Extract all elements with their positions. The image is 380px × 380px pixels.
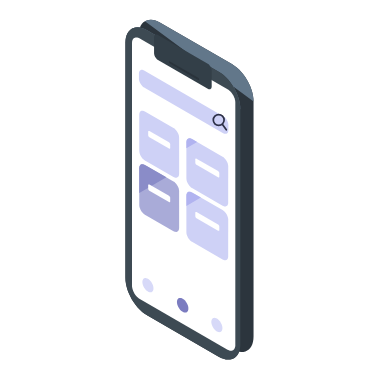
button[interactable]: Isometric smartphone illustration bbox=[0, 0, 380, 380]
